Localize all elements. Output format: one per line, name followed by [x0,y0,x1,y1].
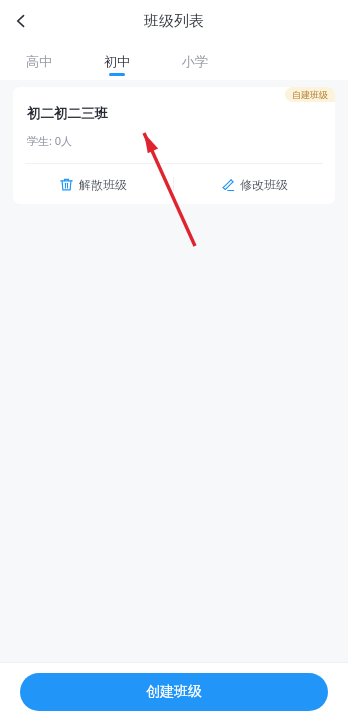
button[interactable]: 修改班级 [174,164,335,204]
staticText: 解散班级 [79,177,127,192]
button[interactable]: 高中 [0,42,78,80]
staticText: 小学 [182,53,208,69]
button[interactable]: 解散班级 [13,164,173,204]
staticText: 班级列表 [144,12,204,31]
staticText: 初中 [104,53,130,69]
staticText: 修改班级 [240,177,288,192]
button[interactable]: 创建班级 [20,673,328,711]
staticText: 初二初二三班 [27,105,108,122]
staticText: 自建班级 [292,89,328,100]
staticText: 创建班级 [146,683,202,701]
staticText: 高中 [26,53,52,69]
staticText: 学生: 0人 [27,133,73,148]
button[interactable]: Back [0,0,42,42]
button[interactable]: 小学 [156,42,234,80]
button[interactable]: 初中 [78,42,156,80]
button[interactable]: 初二初二三班 [13,87,335,204]
